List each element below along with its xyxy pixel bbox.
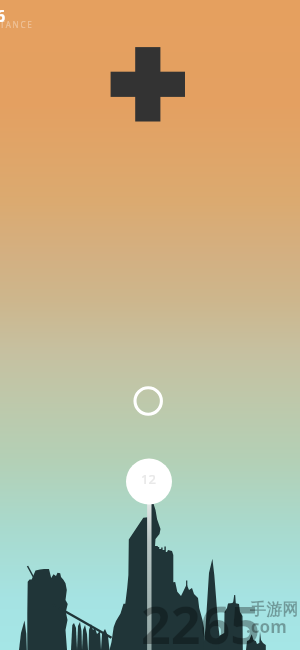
staticText: 2265: [141, 588, 260, 650]
staticText: TANCE: [0, 19, 34, 30]
staticText: 6: [0, 5, 6, 27]
staticText: .com: [246, 615, 287, 638]
staticText: 手游网: [250, 600, 298, 620]
staticText: 12: [141, 470, 156, 488]
